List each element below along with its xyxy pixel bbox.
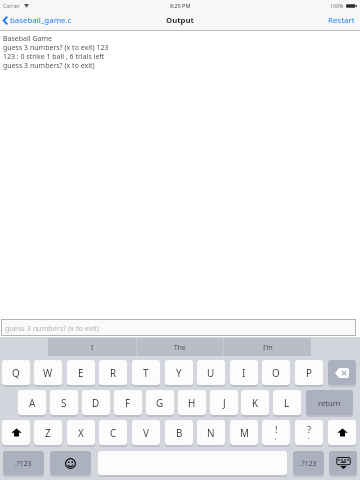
staticText: ,	[275, 432, 277, 442]
staticText: baseball_game.c	[10, 15, 72, 26]
staticText: N	[207, 426, 215, 439]
staticText: W	[43, 366, 53, 379]
staticText: G	[156, 396, 164, 409]
button[interactable]: R	[99, 360, 127, 385]
staticText: Output	[166, 15, 194, 26]
button[interactable]: baseball_game.c	[3, 15, 76, 26]
staticText: return	[318, 398, 341, 408]
button[interactable]: K	[241, 390, 269, 415]
button[interactable]: !	[262, 420, 290, 445]
button[interactable]: The	[137, 338, 223, 356]
button[interactable]: P	[295, 360, 323, 385]
staticText: I	[91, 343, 94, 352]
staticText: R	[110, 366, 117, 379]
staticText: H	[188, 396, 196, 409]
button[interactable]: .?123	[293, 451, 324, 475]
button[interactable]: Shift	[328, 420, 356, 445]
button[interactable]: Q	[2, 360, 30, 385]
button[interactable]: U	[197, 360, 225, 385]
staticText: S	[61, 396, 67, 409]
staticText: Restart	[328, 15, 355, 26]
button[interactable]: guess 3 numbers? (x to exit)	[2, 320, 355, 335]
button[interactable]: I	[48, 338, 136, 356]
staticText: D	[92, 396, 100, 409]
staticText: C	[110, 426, 117, 439]
button[interactable]: ?	[295, 420, 323, 445]
button[interactable]: T	[132, 360, 160, 385]
staticText: I'm	[263, 343, 273, 352]
staticText: Carrier	[3, 2, 20, 9]
button[interactable]: E	[67, 360, 95, 385]
button[interactable]: F	[114, 390, 142, 415]
button[interactable]: I'm	[224, 338, 311, 356]
button[interactable]: H	[178, 390, 206, 415]
staticText: P	[306, 366, 312, 379]
staticText: 8:25 PM	[170, 2, 191, 9]
button[interactable]: Restart	[328, 15, 355, 26]
staticText: 100%	[330, 2, 344, 9]
button[interactable]: return	[306, 390, 353, 415]
button[interactable]: V	[132, 420, 160, 445]
button[interactable]: G	[146, 390, 174, 415]
button[interactable]: Emoji	[50, 451, 91, 475]
staticText: Y	[176, 366, 182, 379]
staticText: .?123	[300, 459, 317, 468]
button[interactable]: B	[165, 420, 193, 445]
staticText: I	[242, 366, 246, 379]
button[interactable]: W	[34, 360, 62, 385]
staticText: B	[176, 426, 183, 439]
staticText: Q	[12, 366, 20, 379]
button[interactable]: J	[210, 390, 238, 415]
button[interactable]: Backspace	[328, 360, 356, 385]
button[interactable]: I	[230, 360, 258, 385]
staticText: V	[143, 426, 149, 439]
staticText: F	[125, 396, 131, 409]
staticText: Baseball Game guess 3 numbers? (x to exi…	[3, 34, 109, 70]
staticText: M	[240, 426, 249, 439]
staticText: .?123	[15, 459, 32, 468]
button[interactable]: .?123	[3, 451, 44, 475]
button[interactable]: D	[82, 390, 110, 415]
staticText: ?	[307, 423, 312, 436]
staticText: L	[284, 396, 290, 409]
button[interactable]: Y	[165, 360, 193, 385]
staticText: E	[78, 366, 84, 379]
button[interactable]: O	[262, 360, 290, 385]
button[interactable]: Shift	[2, 420, 30, 445]
button[interactable]: A	[18, 390, 46, 415]
staticText: X	[78, 426, 84, 439]
staticText: !	[275, 423, 278, 436]
staticText: Z	[45, 426, 51, 439]
staticText: O	[272, 366, 280, 379]
staticText: The	[174, 343, 186, 352]
staticText: guess 3 numbers? (x to exit)	[5, 323, 100, 333]
button[interactable]: N	[197, 420, 225, 445]
staticText: K	[252, 396, 259, 409]
button[interactable]: S	[50, 390, 78, 415]
staticText: .	[308, 432, 310, 442]
button[interactable]: X	[67, 420, 95, 445]
button[interactable]: M	[230, 420, 258, 445]
staticText: J	[223, 396, 226, 409]
staticText: A	[29, 396, 36, 409]
staticText: U	[207, 366, 215, 379]
button[interactable]: Hide keyboard	[329, 451, 357, 475]
button[interactable]: L	[273, 390, 301, 415]
staticText: T	[143, 366, 149, 379]
button[interactable]: Z	[34, 420, 62, 445]
button[interactable]: C	[99, 420, 127, 445]
